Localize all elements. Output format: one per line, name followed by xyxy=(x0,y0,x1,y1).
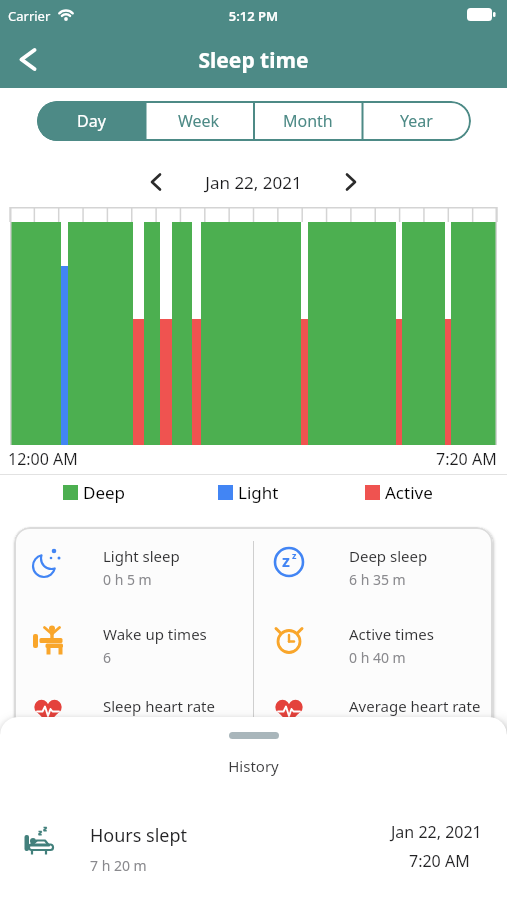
staticText: 0 h 5 m xyxy=(103,570,152,589)
staticText: Week xyxy=(178,110,220,132)
staticText: Hours slept xyxy=(90,823,188,848)
staticText: History xyxy=(0,756,507,776)
staticText: 5:12 PM xyxy=(0,7,507,25)
staticText: 7:20 AM xyxy=(436,448,497,470)
staticText: z xyxy=(292,549,297,561)
staticText: Jan 22, 2021 xyxy=(391,821,482,843)
staticText: Wake up times xyxy=(103,624,207,644)
staticText: Active xyxy=(385,481,433,504)
staticText: Deep xyxy=(83,481,126,504)
staticText: Month xyxy=(283,110,333,132)
staticText: 6 xyxy=(103,648,112,667)
staticText: z xyxy=(282,550,290,572)
staticText: Day xyxy=(77,110,106,132)
staticText: Carrier xyxy=(8,7,51,25)
staticText: Year xyxy=(400,110,433,132)
staticText: Sleep heart rate xyxy=(103,696,215,716)
staticText: Active times xyxy=(349,624,435,644)
staticText: Jan 22, 2021 xyxy=(0,171,507,194)
staticText: 6 h 35 m xyxy=(349,570,406,589)
staticText: Light xyxy=(238,481,279,504)
staticText: 0 h 40 m xyxy=(349,648,406,667)
staticText: 12:00 AM xyxy=(8,448,78,470)
staticText: Sleep time xyxy=(0,46,507,75)
staticText: Deep sleep xyxy=(349,546,428,566)
staticText: 7 h 20 m xyxy=(90,856,147,875)
staticText: 7:20 AM xyxy=(409,850,470,872)
staticText: Average heart rate xyxy=(349,696,481,716)
staticText: Light sleep xyxy=(103,546,180,566)
